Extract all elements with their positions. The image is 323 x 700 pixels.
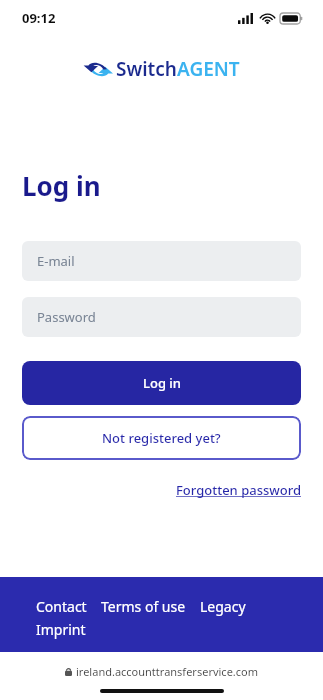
button[interactable]: Legacy	[200, 597, 246, 616]
staticText: Log in	[143, 374, 181, 392]
staticText: Not registered yet?	[102, 429, 221, 447]
staticText: Contact	[36, 597, 87, 616]
button[interactable]: Address bar, secure site	[65, 664, 258, 679]
button[interactable]: Contact	[36, 597, 87, 616]
button[interactable]: Forgotten password	[176, 478, 301, 502]
staticText: E-mail	[37, 252, 75, 270]
button[interactable]: Log in	[22, 361, 301, 405]
staticText: AGENT	[177, 56, 240, 82]
button[interactable]: E-mail	[22, 241, 301, 281]
button[interactable]: Terms of use	[101, 597, 186, 616]
staticText: ireland.accounttransferservice.com	[76, 664, 258, 679]
staticText: Legacy	[200, 597, 246, 616]
staticText: Password	[37, 308, 96, 326]
button[interactable]: Password	[22, 297, 301, 337]
staticText: Log in	[22, 168, 101, 203]
button[interactable]: Not registered yet?	[22, 416, 301, 460]
staticText: Terms of use	[101, 597, 186, 616]
staticText: Forgotten password	[176, 481, 301, 499]
staticText: 09:12	[22, 9, 56, 27]
staticText: Switch	[116, 56, 177, 82]
staticText: Imprint	[36, 620, 86, 639]
button[interactable]: Imprint	[36, 620, 86, 639]
